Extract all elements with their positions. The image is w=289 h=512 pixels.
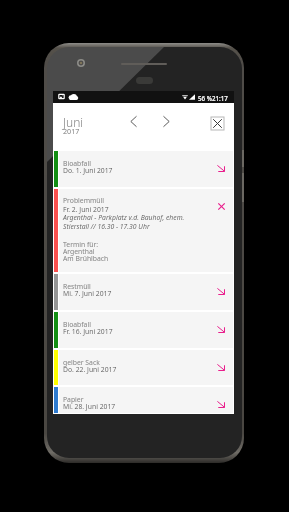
button[interactable]: Expand details (215, 162, 227, 174)
button[interactable]: Collapse details (215, 200, 227, 212)
staticText: Argenthal (63, 247, 95, 256)
staticText: Mi. 7. Juni 2017 (63, 289, 112, 298)
staticText: Bioabfall (63, 320, 91, 329)
staticText: Papier (63, 395, 84, 404)
staticText: Termin für: (63, 240, 99, 249)
button[interactable]: Restmüll (53, 274, 234, 310)
staticText: 21:17 (212, 94, 228, 102)
button[interactable]: Close (211, 117, 224, 130)
button[interactable]: Bioabfall (53, 312, 234, 348)
staticText: gelber Sack (63, 358, 100, 367)
staticText: Bioabfall (63, 159, 91, 168)
staticText: Mi. 28. Juni 2017 (63, 402, 116, 411)
button[interactable]: Papier (53, 387, 234, 413)
staticText: Restmüll (63, 282, 91, 291)
button[interactable]: Expand details (215, 323, 227, 335)
button[interactable]: gelber Sack (53, 350, 234, 385)
button[interactable]: Problemmüll (53, 189, 234, 272)
button[interactable]: Expand details (215, 361, 227, 373)
staticText: 2017 (63, 126, 80, 136)
staticText: Argenthal - Parkplatz v.d. Bauhof, ehem. (63, 213, 185, 222)
staticText: Do. 1. Juni 2017 (63, 166, 113, 175)
button[interactable]: Bioabfall (53, 151, 234, 187)
staticText: Juni (63, 114, 84, 130)
staticText: Stierstall // 16.30 - 17.30 Uhr (63, 222, 150, 231)
staticText: Fr. 16. Juni 2017 (63, 327, 113, 336)
button[interactable]: Expand details (215, 398, 227, 410)
button[interactable]: Next month (156, 111, 176, 131)
button[interactable]: Expand details (215, 285, 227, 297)
staticText: Problemmüll (63, 196, 105, 205)
staticText: Am Brühlbach (63, 254, 109, 263)
button[interactable]: Previous month (123, 111, 143, 131)
staticText: 56 % (198, 94, 212, 102)
staticText: Fr. 2. Juni 2017 (63, 205, 109, 214)
staticText: Do. 22. Juni 2017 (63, 365, 117, 374)
